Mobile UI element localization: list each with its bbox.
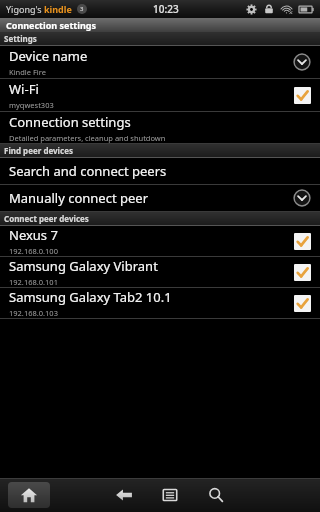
button[interactable]: Samsung Galaxy Tab2 10.1 (0, 288, 320, 318)
button[interactable]: Connection settings (0, 112, 320, 143)
staticText: 3 (80, 5, 84, 13)
staticText: Connection settings (6, 19, 96, 31)
button[interactable]: Back (108, 479, 140, 511)
staticText: Find peer devices (4, 145, 73, 156)
button[interactable]: Home (8, 482, 50, 508)
staticText: 192.168.0.100 (9, 246, 58, 256)
button[interactable]: Samsung Galaxy Vibrant (0, 257, 320, 287)
staticText: Samsung Galaxy Vibrant (9, 257, 158, 275)
staticText: Yigong's (6, 3, 44, 15)
button[interactable]: Manually connect peer (0, 185, 320, 211)
staticText: Device name (9, 47, 88, 65)
staticText: Manually connect peer (9, 189, 149, 207)
staticText: Settings (4, 33, 37, 44)
staticText: Connection settings (9, 113, 131, 131)
staticText: Kindle Fire (9, 67, 46, 77)
button[interactable]: Wi-Fi (0, 79, 320, 111)
staticText: 10:23 (153, 2, 179, 16)
staticText: 192.168.0.103 (9, 308, 58, 318)
staticText: Wi-Fi (9, 80, 39, 98)
button[interactable]: Search and connect peers (0, 158, 320, 184)
staticText: Detailed parameters, cleanup and shutdow… (9, 133, 166, 143)
staticText: Search and connect peers (9, 162, 167, 180)
staticText: myqwest303 (9, 100, 54, 110)
button[interactable]: Nexus 7 (0, 226, 320, 256)
staticText: Connect peer devices (4, 213, 89, 224)
staticText: Nexus 7 (9, 226, 58, 244)
button[interactable]: Search (200, 479, 232, 511)
button[interactable]: Device name (0, 46, 320, 78)
staticText: kindle (44, 3, 72, 15)
button[interactable]: Menu (154, 479, 186, 511)
staticText: 192.168.0.101 (9, 277, 58, 287)
staticText: Samsung Galaxy Tab2 10.1 (9, 288, 172, 306)
